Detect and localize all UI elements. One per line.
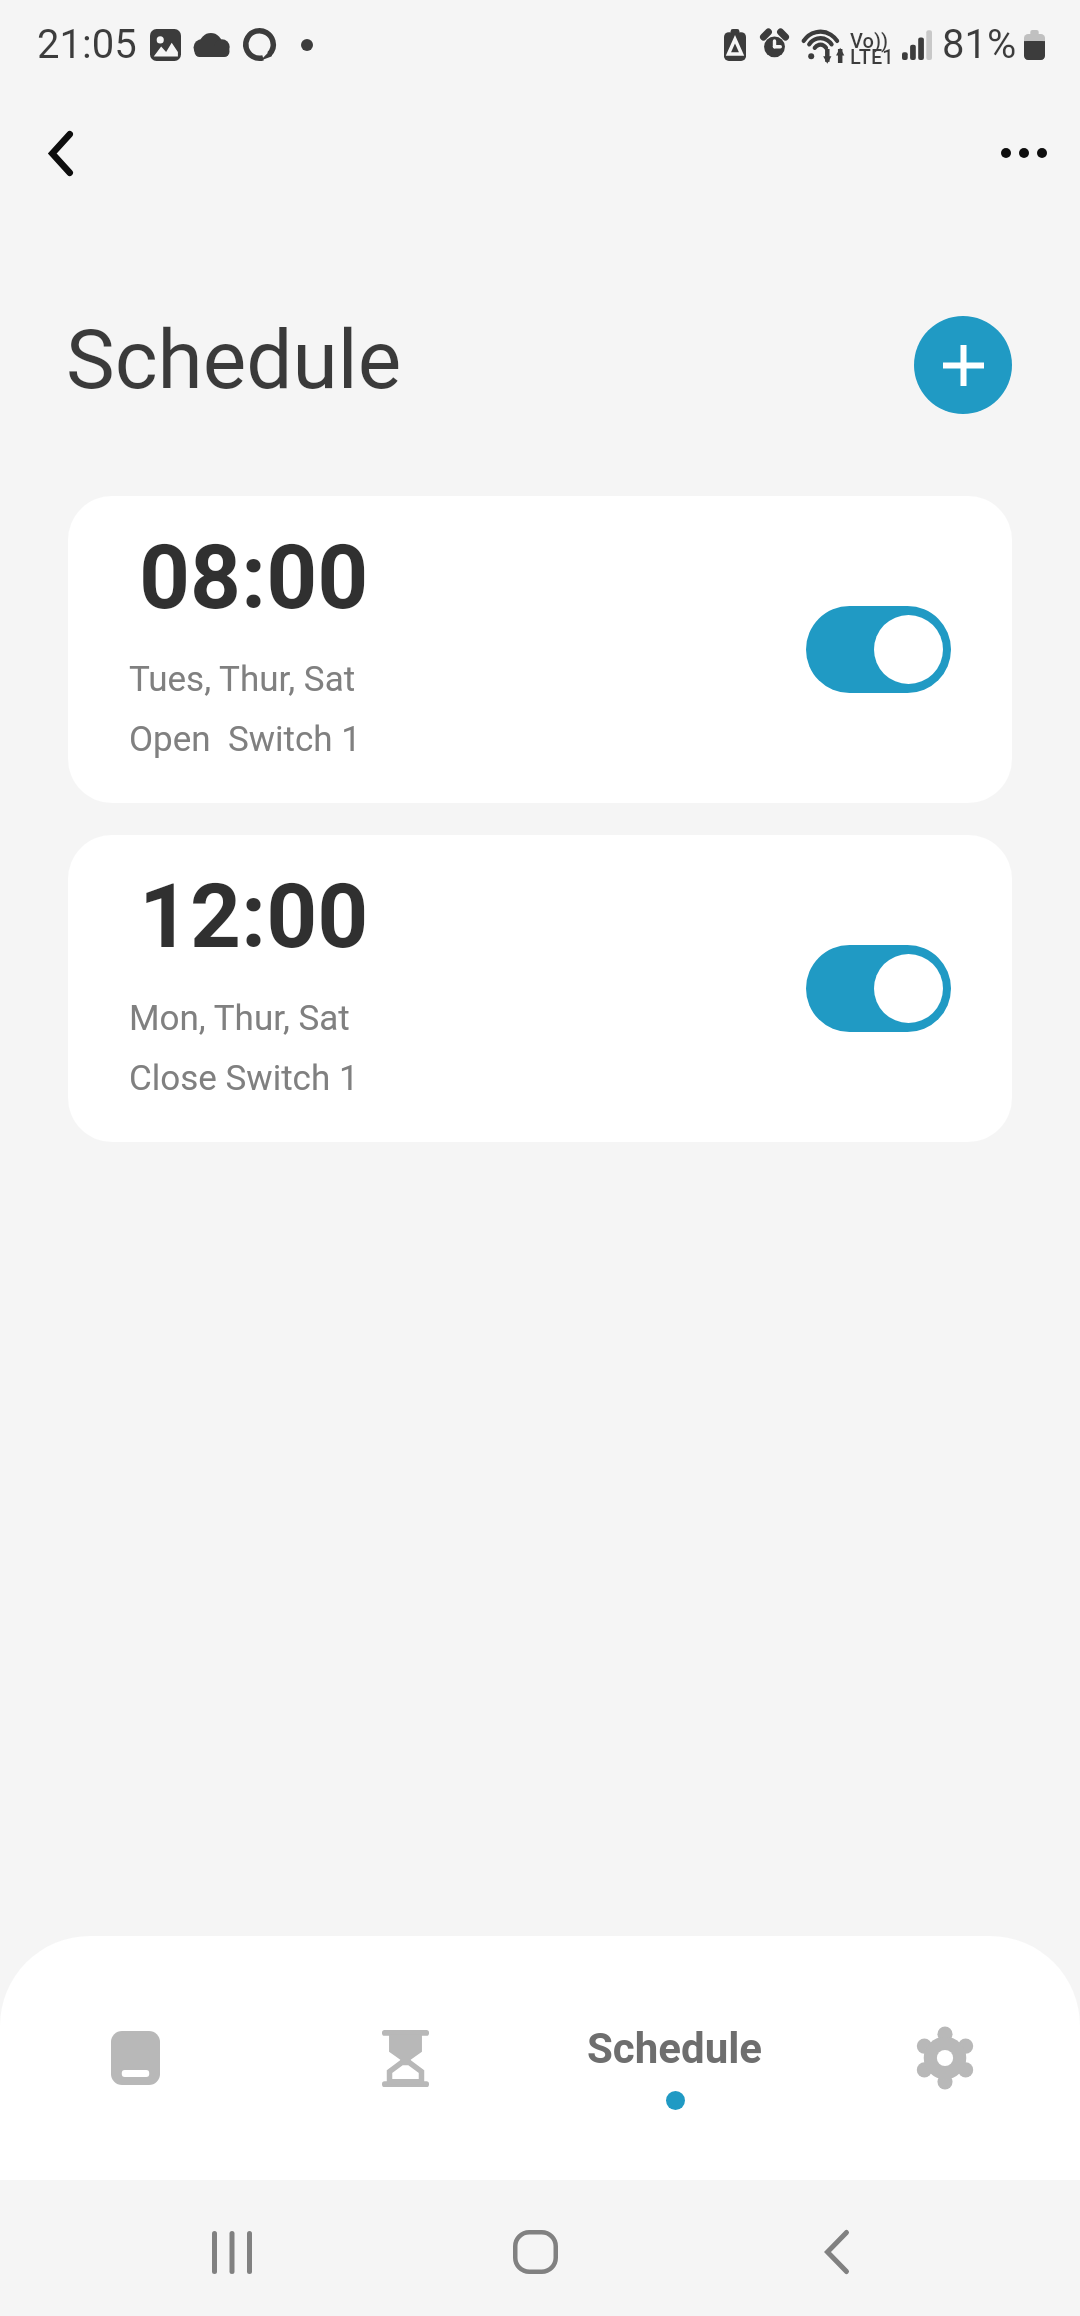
staticText: Open Switch 1	[129, 719, 361, 760]
button[interactable]: Home	[475, 2184, 595, 2316]
button[interactable]: 12:00	[68, 835, 1012, 1142]
button[interactable]: Add schedule	[914, 316, 1012, 414]
staticText: Mon, Thur, Sat	[129, 998, 350, 1039]
staticText: Tues, Thur, Sat	[129, 659, 356, 700]
button[interactable]: More options	[980, 109, 1068, 197]
staticText: Close Switch 1	[129, 1058, 359, 1099]
button[interactable]: Timer	[270, 1936, 540, 2180]
staticText: 08:00	[139, 525, 369, 629]
button[interactable]: 08:00	[68, 496, 1012, 803]
button[interactable]: Back	[17, 109, 105, 197]
staticText: Schedule	[587, 2024, 763, 2073]
button[interactable]: Recents	[172, 2184, 292, 2316]
button[interactable]: Back	[777, 2184, 897, 2316]
button[interactable]: Settings	[810, 1936, 1080, 2180]
button[interactable]: Devices	[0, 1936, 270, 2180]
staticText: 81%	[942, 21, 1017, 68]
staticText: Schedule	[66, 312, 402, 408]
button[interactable]: Schedule	[540, 1936, 810, 2180]
button[interactable]: Enable schedule 12:00	[806, 945, 951, 1032]
staticText: 12:00	[139, 864, 369, 968]
button[interactable]: Enable schedule 08:00	[806, 606, 951, 693]
staticText: LTE1	[850, 45, 894, 68]
staticText: 21:05	[37, 21, 137, 68]
staticText: Vo))	[850, 29, 889, 52]
